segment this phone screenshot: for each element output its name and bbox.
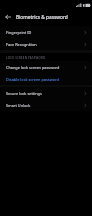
button[interactable]: Back	[0, 10, 16, 24]
button[interactable]: Change lock screen password	[0, 61, 92, 73]
staticText: Face Recognition	[6, 42, 83, 47]
button[interactable]: Fingerprint ID	[0, 26, 92, 38]
staticText: Biometrics & password	[16, 14, 68, 21]
staticText: Disable lock screen password	[6, 77, 88, 82]
button[interactable]: Face Recognition	[0, 38, 92, 50]
staticText: Secure lock settings	[6, 91, 83, 96]
staticText: Smart Unlock	[6, 103, 83, 108]
button[interactable]: Smart Unlock	[0, 99, 92, 111]
button[interactable]: Secure lock settings	[0, 87, 92, 99]
staticText: LOCK SCREEN PASSWORD	[6, 56, 46, 60]
button[interactable]: Disable lock screen password	[0, 73, 92, 85]
staticText: Fingerprint ID	[6, 30, 83, 35]
staticText: Change lock screen password	[6, 65, 83, 70]
